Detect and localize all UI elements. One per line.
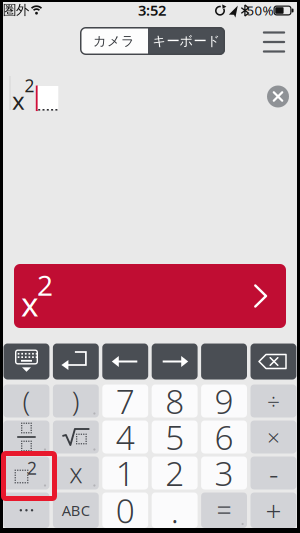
staticText: x (12, 85, 25, 116)
button[interactable] (102, 343, 148, 379)
button[interactable] (3, 343, 49, 379)
button[interactable]: キーボード (148, 27, 225, 55)
button[interactable] (3, 492, 49, 528)
button[interactable]: = (201, 492, 247, 528)
button[interactable]: 2 (152, 456, 198, 489)
button[interactable]: × (250, 420, 296, 453)
staticText: x (21, 281, 39, 326)
button[interactable] (53, 343, 99, 379)
button[interactable]: 2 (3, 456, 49, 489)
staticText: 2 (165, 451, 184, 495)
staticText: - (269, 453, 278, 492)
button[interactable] (250, 343, 296, 379)
staticText: 0 (116, 488, 135, 532)
button[interactable] (267, 85, 289, 107)
staticText: 8 (165, 379, 184, 423)
button[interactable]: 4 (102, 420, 148, 453)
button[interactable]: ( (3, 384, 49, 417)
staticText: 4 (116, 415, 135, 459)
staticText: ) (72, 382, 80, 420)
staticText: 3:52 (138, 0, 166, 20)
staticText: 3 (214, 451, 233, 495)
button[interactable]: 1 (102, 456, 148, 489)
staticText: = (216, 492, 231, 528)
button[interactable]: 8 (152, 384, 198, 417)
button[interactable]: + (250, 492, 296, 528)
button[interactable]: ABC (53, 492, 99, 528)
staticText: ABC (62, 500, 90, 520)
button[interactable]: 5 (152, 420, 198, 453)
button[interactable] (201, 343, 247, 379)
button[interactable]: 3 (201, 456, 247, 489)
staticText: 2 (27, 456, 37, 479)
staticText: 5 (165, 415, 184, 459)
button[interactable] (53, 420, 99, 453)
staticText: 2 (24, 74, 34, 97)
staticText: キーボード (152, 33, 220, 49)
button[interactable]: カメラ (80, 27, 148, 55)
button[interactable] (152, 343, 198, 379)
staticText: 50% (246, 1, 273, 19)
staticText: 9 (214, 379, 233, 423)
staticText: ( (22, 382, 30, 420)
staticText: 6 (214, 415, 233, 459)
button[interactable]: x (14, 264, 286, 328)
staticText: 1 (116, 451, 135, 495)
button[interactable]: ÷ (250, 384, 296, 417)
button[interactable]: ) (53, 384, 99, 417)
button[interactable]: 0 (102, 492, 148, 528)
staticText: カメラ (93, 33, 135, 49)
button[interactable]: 6 (201, 420, 247, 453)
staticText: 7 (116, 379, 135, 423)
staticText: 2 (37, 266, 53, 304)
button[interactable]: 7 (102, 384, 148, 417)
staticText: ÷ (267, 386, 280, 416)
staticText: x (69, 455, 82, 491)
staticText: 圏外 (3, 2, 29, 18)
staticText: + (265, 492, 281, 529)
button[interactable]: x (53, 456, 99, 489)
staticText: . (171, 488, 179, 532)
button[interactable] (260, 30, 288, 54)
button[interactable] (3, 420, 49, 453)
staticText: × (267, 422, 280, 452)
button[interactable]: . (152, 492, 198, 528)
button[interactable]: - (250, 456, 296, 489)
button[interactable]: 9 (201, 384, 247, 417)
